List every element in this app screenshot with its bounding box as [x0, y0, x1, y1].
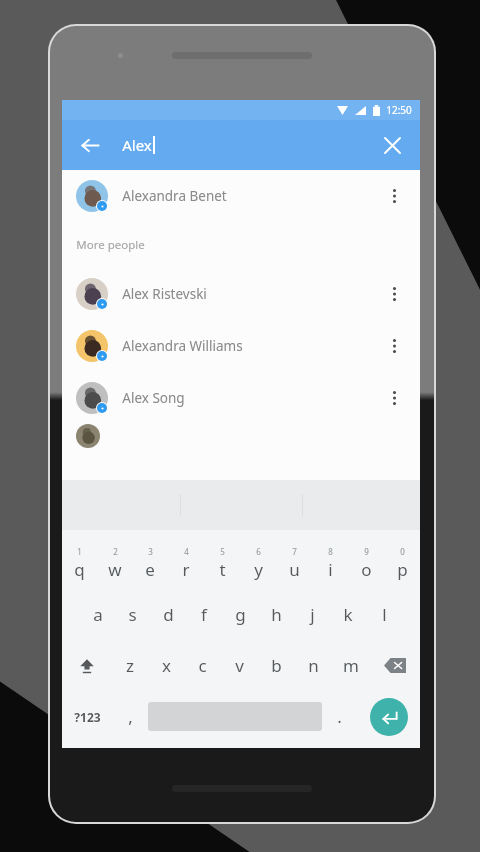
button[interactable]: Shift	[62, 640, 112, 691]
staticText: ,	[128, 705, 133, 728]
staticText: Alex Song	[122, 389, 185, 407]
button[interactable]: b	[258, 640, 295, 691]
button[interactable]: 7	[276, 538, 312, 589]
button[interactable]	[62, 424, 420, 448]
button[interactable]: h	[258, 589, 294, 640]
staticText: Alex	[122, 135, 152, 155]
staticText: l	[382, 603, 387, 626]
staticText: 2	[113, 546, 118, 557]
button[interactable]: More options	[376, 328, 412, 364]
staticText: v	[235, 654, 244, 677]
button[interactable]: 6	[240, 538, 276, 589]
button[interactable]: 9	[348, 538, 384, 589]
staticText: x	[162, 654, 171, 677]
staticText: w	[108, 558, 122, 581]
button[interactable]: Alexandra Benet	[62, 170, 420, 222]
staticText: 5	[220, 546, 225, 557]
staticText: r	[182, 558, 190, 581]
button[interactable]: s	[115, 589, 150, 640]
button[interactable]: ?123	[62, 691, 113, 742]
staticText: 0	[400, 546, 405, 557]
staticText: 1	[77, 546, 82, 557]
button[interactable]: f	[186, 589, 222, 640]
button[interactable]: 2	[97, 538, 132, 589]
button[interactable]: 5	[204, 538, 240, 589]
staticText: b	[271, 654, 282, 677]
button[interactable]: Backspace	[369, 640, 420, 691]
button[interactable]: v	[221, 640, 258, 691]
staticText: h	[271, 603, 282, 626]
button[interactable]: Clear search	[372, 125, 412, 165]
staticText: 12:50	[386, 103, 412, 117]
button[interactable]: x	[148, 640, 184, 691]
staticText: p	[397, 558, 408, 581]
button[interactable]: c	[184, 640, 221, 691]
staticText: 8	[328, 546, 333, 557]
button[interactable]: k	[330, 589, 366, 640]
staticText: z	[126, 654, 134, 677]
staticText: t	[219, 558, 226, 581]
staticText: n	[308, 654, 319, 677]
staticText: 9	[364, 546, 369, 557]
staticText: e	[145, 558, 155, 581]
staticText: c	[198, 654, 207, 677]
staticText: 4	[184, 546, 189, 557]
staticText: Alex Ristevski	[122, 285, 207, 303]
button[interactable]: 0	[384, 538, 420, 589]
button[interactable]: 8	[312, 538, 348, 589]
button[interactable]: More options	[376, 276, 412, 312]
staticText: Alexandra Benet	[122, 187, 227, 205]
staticText: s	[128, 603, 137, 626]
staticText: ?123	[74, 709, 101, 725]
button[interactable]: 3	[132, 538, 168, 589]
button[interactable]: g	[222, 589, 258, 640]
button[interactable]: n	[295, 640, 332, 691]
button[interactable]: m	[332, 640, 369, 691]
button[interactable]: Enter	[357, 691, 420, 742]
button[interactable]: 4	[168, 538, 204, 589]
staticText: g	[235, 603, 246, 626]
staticText: 7	[292, 546, 297, 557]
staticText: q	[74, 558, 85, 581]
button[interactable]: a	[80, 589, 115, 640]
staticText: y	[254, 558, 263, 581]
button[interactable]: 1	[62, 538, 97, 589]
staticText: d	[163, 603, 174, 626]
staticText: More people	[76, 237, 145, 253]
button[interactable]: Back	[70, 125, 110, 165]
staticText: o	[361, 558, 372, 581]
button[interactable]: Alex Ristevski	[62, 268, 420, 320]
staticText: a	[93, 603, 103, 626]
button[interactable]: l	[366, 589, 402, 640]
staticText: Alexandra Williams	[122, 337, 243, 355]
button[interactable]: Alex Song	[62, 372, 420, 424]
staticText: .	[337, 705, 342, 728]
staticText: 3	[148, 546, 153, 557]
button[interactable]: j	[294, 589, 330, 640]
button[interactable]: ,	[113, 691, 148, 742]
staticText: u	[289, 558, 300, 581]
staticText: f	[201, 603, 207, 626]
button[interactable]: .	[322, 691, 357, 742]
staticText: m	[343, 654, 359, 677]
button[interactable]: More options	[376, 380, 412, 416]
button[interactable]: More options	[376, 178, 412, 214]
button[interactable]: z	[112, 640, 148, 691]
button[interactable]: d	[150, 589, 186, 640]
staticText: k	[343, 603, 353, 626]
staticText: 6	[256, 546, 261, 557]
staticText: i	[328, 558, 333, 581]
staticText: j	[310, 603, 315, 626]
button[interactable]: Alexandra Williams	[62, 320, 420, 372]
